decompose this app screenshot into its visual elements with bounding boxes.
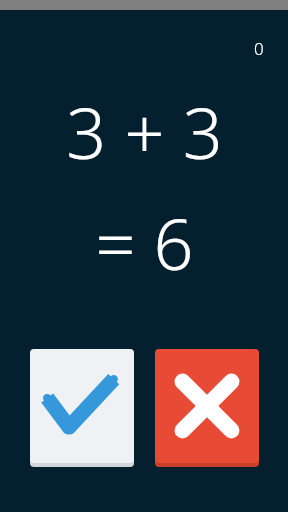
button[interactable]: Wrong answer — [155, 349, 259, 467]
staticText: = 6 — [95, 195, 194, 290]
staticText: 3 + 3 — [66, 84, 223, 179]
staticText: 0 — [254, 37, 264, 60]
button[interactable]: Correct answer — [30, 349, 134, 467]
